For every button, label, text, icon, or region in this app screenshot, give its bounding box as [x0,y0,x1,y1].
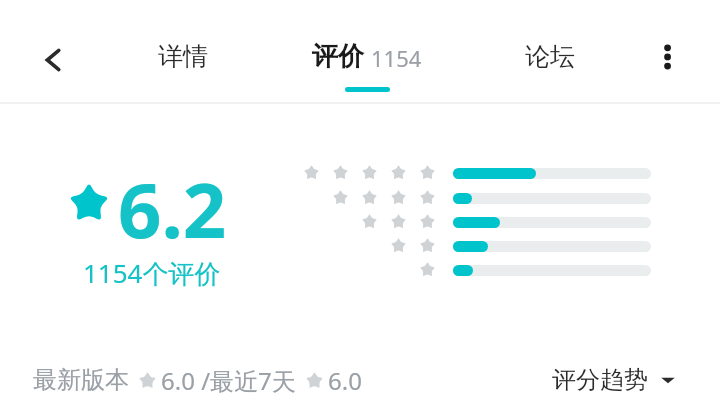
staticText: 1154 [371,43,422,73]
staticText: 6.0 [328,364,362,397]
button[interactable]: 评分趋势 [552,360,676,400]
staticText: 最新版本 [33,365,129,395]
button[interactable]: 评价 [272,30,462,82]
staticText: 评分趋势 [552,365,648,395]
staticText: 6.0 /最近7天 [161,364,296,397]
button[interactable]: 论坛 [495,30,605,82]
staticText: 1154个评价 [83,255,221,291]
staticText: 详情 [158,41,208,72]
button[interactable]: 详情 [128,30,238,82]
staticText: 评价 [312,40,364,73]
button[interactable]: Back [30,36,78,84]
button[interactable]: More options [645,32,693,80]
staticText: 6.2 [118,157,227,261]
staticText: 论坛 [525,41,575,72]
